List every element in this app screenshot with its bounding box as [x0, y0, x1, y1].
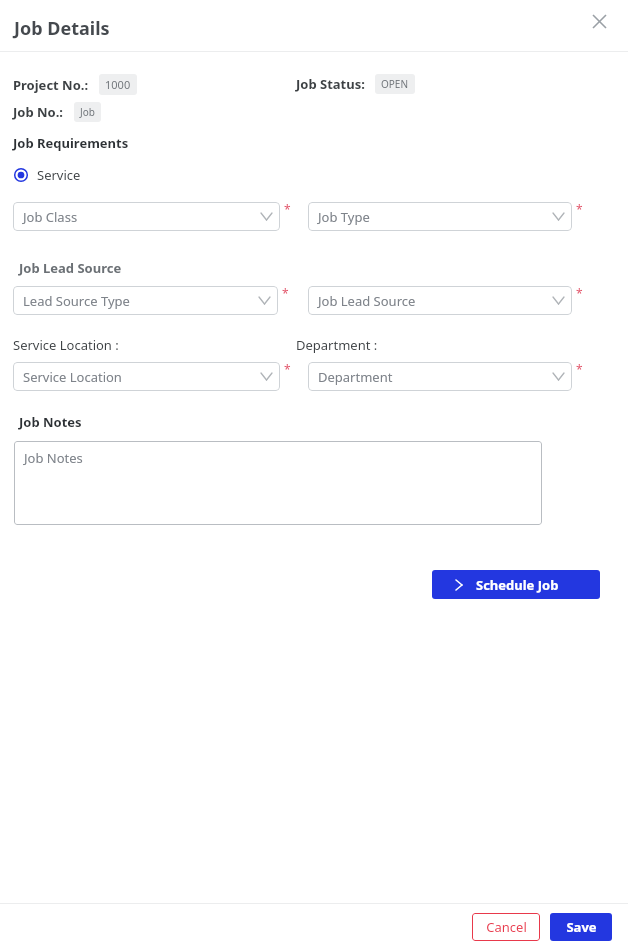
staticText: Service Location :: [13, 336, 119, 354]
staticText: *: [284, 361, 291, 377]
staticText: Job No.:: [13, 103, 64, 121]
staticText: Job: [80, 105, 95, 119]
staticText: Department :: [296, 336, 378, 354]
staticText: Job Requirements: [13, 134, 129, 152]
button[interactable]: Job Class: [13, 202, 280, 231]
staticText: Job Lead Source: [19, 259, 122, 277]
button[interactable]: Close: [586, 8, 612, 34]
staticText: Job Type: [318, 208, 553, 226]
staticText: OPEN: [381, 77, 409, 91]
staticText: Save: [566, 918, 597, 936]
staticText: Schedule Job: [476, 576, 559, 594]
button[interactable]: Cancel: [472, 913, 540, 941]
staticText: *: [282, 285, 289, 301]
staticText: *: [576, 201, 583, 217]
staticText: Project No.:: [13, 76, 89, 94]
button[interactable]: Schedule Job: [432, 570, 600, 599]
button[interactable]: Job Lead Source: [308, 286, 572, 315]
staticText: Department: [318, 368, 553, 386]
button[interactable]: Lead Source Type: [13, 286, 278, 315]
staticText: Job Status:: [296, 75, 365, 93]
button[interactable]: Department: [308, 362, 572, 391]
button[interactable]: Service Location: [13, 362, 280, 391]
staticText: Service Location: [23, 368, 261, 386]
staticText: *: [284, 201, 291, 217]
staticText: *: [576, 361, 583, 377]
staticText: Job Lead Source: [318, 292, 553, 310]
staticText: Job Notes: [24, 449, 83, 467]
staticText: Job Notes: [19, 413, 82, 431]
staticText: Cancel: [486, 918, 527, 936]
button[interactable]: Save: [550, 913, 612, 941]
button[interactable]: Job Type: [308, 202, 572, 231]
staticText: Job Details: [14, 16, 110, 41]
button[interactable]: Service: [12, 164, 83, 186]
staticText: 1000: [105, 77, 131, 92]
staticText: *: [576, 285, 583, 301]
button[interactable]: Job Notes: [14, 441, 542, 525]
staticText: Service: [37, 166, 81, 184]
staticText: Lead Source Type: [23, 292, 259, 310]
staticText: Job Class: [23, 208, 261, 226]
